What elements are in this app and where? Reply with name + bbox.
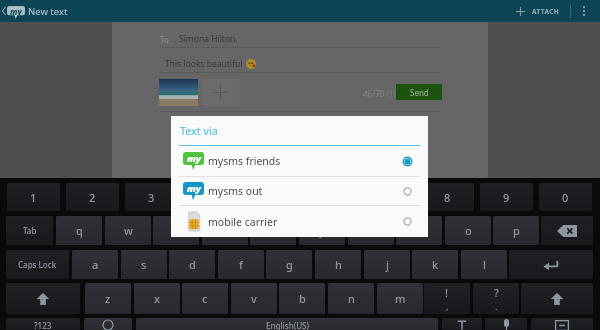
staticText: 8 (444, 190, 451, 205)
button[interactable]: Enter (509, 250, 593, 279)
button[interactable]: d (169, 250, 215, 279)
button[interactable]: f (218, 250, 264, 279)
button[interactable]: ?123 (6, 318, 80, 330)
staticText: Text via (180, 123, 218, 138)
button[interactable]: Caps Lock (6, 250, 69, 279)
button[interactable]: 2 (66, 183, 119, 211)
button[interactable]: 8 (421, 183, 474, 211)
button[interactable]: ! (424, 283, 470, 314)
button[interactable]: my (171, 146, 428, 176)
button[interactable]: t (250, 216, 296, 245)
button[interactable]: z (85, 283, 131, 314)
button[interactable]: h (315, 250, 361, 279)
button[interactable]: i (396, 216, 442, 245)
button[interactable]: o (445, 216, 491, 245)
staticText: To (160, 34, 169, 45)
button[interactable]: 7 (362, 183, 415, 211)
button[interactable]: Send (396, 84, 442, 100)
button[interactable]: w (105, 216, 151, 245)
button[interactable]: m (377, 283, 423, 314)
staticText: 2 (89, 190, 96, 205)
other: Shift (36, 292, 50, 306)
button[interactable]: c (182, 283, 228, 314)
staticText: j (386, 257, 389, 272)
staticText: w (124, 223, 133, 238)
button[interactable]: ? (473, 283, 519, 314)
other: Backspace (557, 225, 577, 237)
staticText: . (495, 300, 498, 312)
button[interactable]: j (364, 250, 410, 279)
staticText: o (465, 223, 472, 238)
button[interactable]: Keyboard options (531, 318, 593, 330)
button[interactable]: Add attachment (202, 79, 239, 106)
staticText: mobile carrier (208, 215, 278, 229)
button[interactable]: Text mode (442, 318, 482, 330)
other: Shift (550, 292, 564, 306)
staticText: my (187, 152, 201, 165)
button[interactable]: k (412, 250, 458, 279)
staticText: New text (28, 5, 68, 18)
button[interactable]: 5 (243, 183, 296, 211)
staticText: 1 (30, 190, 37, 205)
button[interactable]: l (461, 250, 507, 279)
button[interactable]: Voice input (485, 318, 527, 330)
button[interactable]: mobile carrier (171, 206, 428, 237)
staticText: mysms out (208, 184, 263, 198)
staticText: ATTACH (532, 7, 560, 16)
button[interactable]: 6 (303, 183, 356, 211)
button[interactable]: r (202, 216, 248, 245)
staticText: f (239, 257, 243, 272)
staticText: s (141, 257, 147, 272)
other: Keyboard options (555, 320, 569, 330)
button[interactable]: q (56, 216, 102, 245)
button[interactable]: Shift (521, 283, 593, 314)
button[interactable]: b (279, 283, 325, 314)
other: Enter (543, 259, 559, 271)
staticText: Caps Lock (18, 259, 57, 270)
button[interactable]: my (171, 177, 428, 205)
button[interactable]: 9 (480, 183, 533, 211)
staticText: 46/70 (1) (363, 88, 396, 99)
other: Emoji (102, 319, 114, 330)
button[interactable]: a (72, 250, 118, 279)
button[interactable]: v (231, 283, 277, 314)
button[interactable]: 0 (539, 183, 592, 211)
staticText: a (92, 257, 99, 272)
staticText: ? (494, 285, 499, 300)
staticText: my (187, 182, 201, 195)
staticText: 3 (148, 190, 155, 205)
button[interactable]: u (348, 216, 394, 245)
staticText: 4 (207, 190, 214, 205)
staticText: i (418, 223, 421, 238)
button[interactable]: x (134, 283, 180, 314)
button[interactable]: Shift (6, 283, 80, 314)
staticText: mysms friends (208, 154, 281, 168)
button[interactable]: Backspace (541, 216, 593, 245)
staticText: l (483, 257, 486, 272)
button[interactable]: e (153, 216, 199, 245)
button[interactable]: More options (577, 0, 591, 22)
button[interactable]: English(US) (136, 318, 438, 330)
button[interactable]: Tab (6, 216, 53, 245)
button[interactable]: n (328, 283, 374, 314)
button[interactable]: s (121, 250, 167, 279)
button[interactable]: 3 (125, 183, 178, 211)
button[interactable]: 4 (184, 183, 237, 211)
button[interactable]: g (266, 250, 312, 279)
staticText: c (202, 291, 208, 306)
staticText: n (348, 291, 355, 306)
staticText: m (395, 291, 406, 306)
button[interactable]: p (493, 216, 539, 245)
staticText: r (223, 223, 228, 238)
button[interactable]: Back (0, 1, 7, 21)
button[interactable]: 1 (7, 183, 60, 211)
button[interactable]: Emoji (84, 318, 132, 330)
staticText: u (368, 223, 375, 238)
button[interactable]: y (299, 216, 345, 245)
staticText: p (513, 223, 520, 238)
staticText: x (154, 291, 160, 306)
button[interactable]: ATTACH (510, 0, 566, 22)
staticText: Tab (23, 225, 37, 236)
